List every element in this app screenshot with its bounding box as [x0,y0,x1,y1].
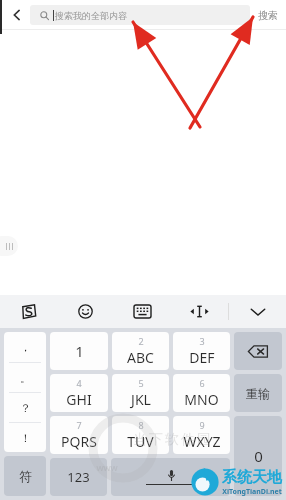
staticText: 重输 [246,386,270,401]
staticText: 下 [149,431,163,449]
button[interactable]: Emoji [57,295,114,328]
staticText: 8 [138,419,144,431]
button[interactable]: 6 [173,374,230,412]
button[interactable]: Voice input [111,458,230,496]
button[interactable]: 0 [234,416,282,496]
staticText: 6 [199,377,205,389]
staticText: MNO [184,390,219,409]
staticText: DEF [189,348,215,367]
button[interactable]: ， [4,332,46,362]
staticText: 1 [75,341,84,361]
button[interactable]: 符 [4,456,46,496]
staticText: 0 [254,446,263,466]
button[interactable]: 3 [173,332,230,370]
staticText: 7 [76,419,82,431]
staticText: 3 [199,335,205,347]
button[interactable]: 搜索 [256,9,280,22]
staticText: 软 [165,431,179,449]
staticText: 。 [20,371,31,385]
button[interactable]: Move cursor [171,295,228,328]
button[interactable]: 重输 [234,374,282,412]
staticText: PQRS [61,432,97,451]
button[interactable]: ！ [4,423,46,452]
button[interactable]: 123 [50,458,107,496]
staticText: ？ [20,401,31,415]
button[interactable]: 9 [173,416,230,454]
button[interactable]: 4 [50,374,108,412]
staticText: 4 [76,377,82,389]
staticText: 件 [181,431,195,449]
button[interactable]: 。 [4,363,46,392]
staticText: XiTongTianDi.net [222,487,282,497]
staticText: WXYZ [183,432,221,451]
button[interactable]: ？ [4,393,46,422]
button[interactable]: 7 [50,416,108,454]
staticText: JKL [131,390,151,409]
button[interactable]: Keyboard layout [114,295,171,328]
staticText: 5 [138,377,144,389]
staticText: 搜索 [258,9,278,22]
staticText: 系统天地 [222,468,282,487]
button[interactable]: 1 [50,332,108,370]
staticText: 当 [133,431,147,449]
staticText: 2 [138,335,144,347]
staticText: 符 [19,468,32,484]
button[interactable]: Backspace [234,332,282,370]
button[interactable]: Sogou logo [0,295,57,328]
staticText: 搜索我的全部内容 [55,10,127,21]
staticText: TUV [127,432,154,451]
button[interactable]: Hide keyboard [229,295,286,328]
button[interactable]: Menu handle [0,236,18,256]
button[interactable]: 搜索我的全部内容 [30,5,250,25]
staticText: GHI [66,390,92,409]
staticText: 9 [199,419,205,431]
staticText: 园 [197,431,211,449]
button[interactable]: 5 [112,374,169,412]
button[interactable]: 2 [112,332,169,370]
staticText: 123 [67,468,90,486]
staticText: ABC [127,348,154,367]
button[interactable]: Back [6,4,28,26]
staticText: ， [20,340,31,354]
button[interactable]: 8 [112,416,169,454]
staticText: www [96,461,118,473]
staticText: ！ [20,431,31,445]
